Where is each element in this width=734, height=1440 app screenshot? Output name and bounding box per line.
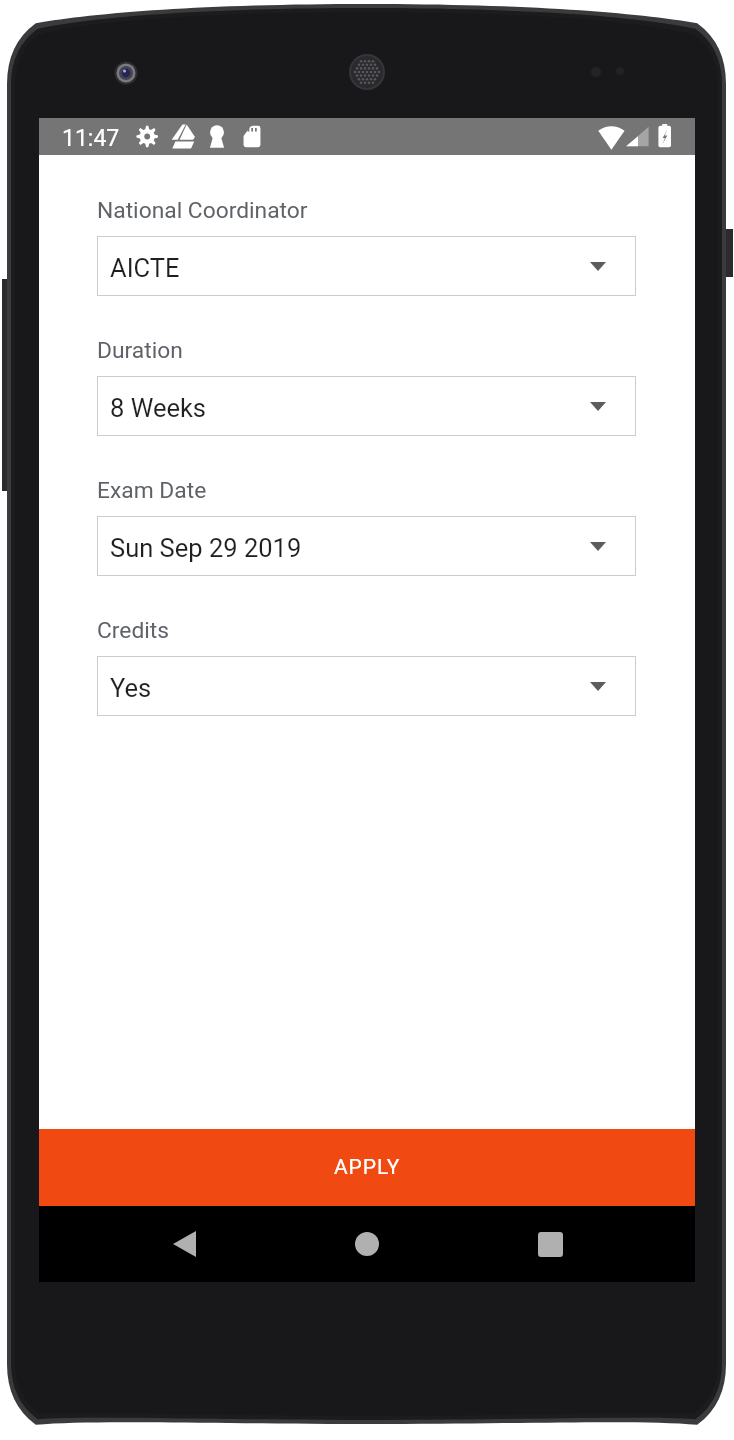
staticText: Sun Sep 29 2019: [110, 533, 302, 563]
button[interactable]: APPLY: [39, 1129, 695, 1206]
staticText: National Coordinator: [97, 197, 308, 224]
button[interactable]: Duration: 8 Weeks: [97, 376, 636, 436]
button[interactable]: Home: [329, 1206, 405, 1282]
staticText: Credits: [97, 617, 170, 644]
button[interactable]: Recent apps: [512, 1206, 588, 1282]
staticText: AICTE: [110, 253, 180, 283]
staticText: Exam Date: [97, 477, 207, 504]
staticText: 11:47: [62, 125, 120, 152]
staticText: Yes: [110, 673, 152, 703]
staticText: Duration: [97, 337, 183, 364]
button[interactable]: National Coordinator: AICTE: [97, 236, 636, 296]
button[interactable]: Exam Date: Sun Sep 29 2019: [97, 516, 636, 576]
staticText: APPLY: [334, 1155, 401, 1180]
button[interactable]: Credits: Yes: [97, 656, 636, 716]
staticText: 8 Weeks: [110, 393, 207, 423]
button[interactable]: Back: [146, 1206, 222, 1282]
